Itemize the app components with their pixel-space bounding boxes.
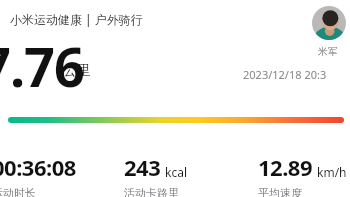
staticText: 7.76 xyxy=(0,29,84,103)
button[interactable]: User profile xyxy=(312,6,346,40)
staticText: 公里 xyxy=(63,62,91,80)
staticText: 2023/12/18 20:3 xyxy=(243,67,327,82)
staticText: 小米运动健康 | 户外骑行 xyxy=(10,11,143,27)
staticText: 243 xyxy=(124,152,161,182)
staticText: 活动卡路里 xyxy=(124,186,179,197)
staticText: 运动时长 xyxy=(0,186,36,197)
staticText: 米军 xyxy=(318,45,338,58)
staticText: 平均速度 xyxy=(258,186,302,197)
staticText: 12.89 xyxy=(258,152,313,182)
staticText: kcal xyxy=(165,164,187,180)
staticText: km/h xyxy=(317,164,347,180)
staticText: 00:36:08 xyxy=(0,152,76,182)
